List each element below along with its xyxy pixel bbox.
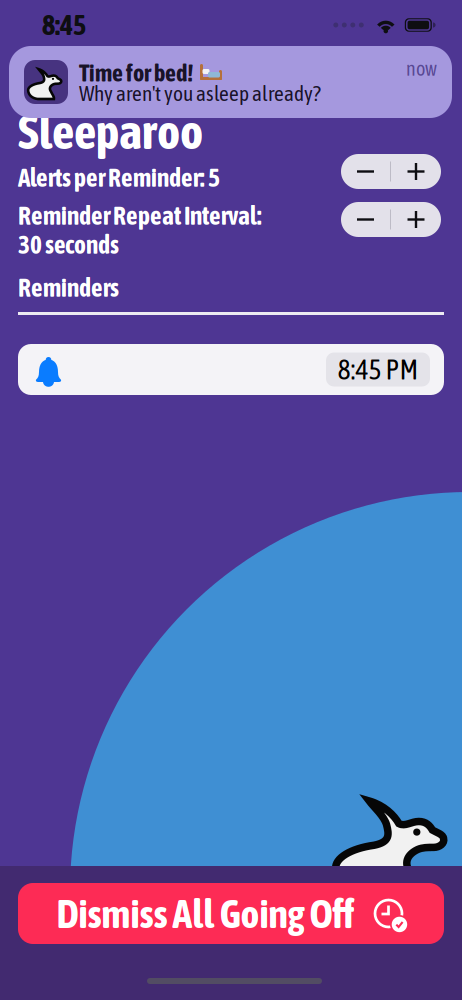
staticText: Time for bed! bbox=[79, 59, 193, 86]
staticText: Dismiss All Going Off bbox=[56, 891, 354, 936]
button[interactable]: Decrease bbox=[341, 154, 390, 189]
button[interactable]: Increase bbox=[391, 154, 441, 189]
staticText: 8:45 bbox=[42, 9, 86, 41]
staticText: Why aren't you asleep already? bbox=[79, 81, 321, 105]
staticText: Alerts per Reminder: 5 bbox=[18, 163, 220, 192]
button[interactable]: Increase bbox=[391, 202, 441, 237]
button[interactable]: Dismiss All Going Off bbox=[18, 883, 444, 944]
staticText: 8:45 PM bbox=[337, 353, 418, 386]
button[interactable]: 8:45 PM bbox=[18, 344, 444, 395]
button[interactable]: Decrease bbox=[341, 202, 390, 237]
staticText: now bbox=[406, 57, 437, 80]
staticText: Sleeparoo bbox=[18, 103, 203, 159]
staticText: Reminders bbox=[18, 273, 119, 302]
staticText: Reminder Repeat Interval: 30 seconds bbox=[18, 201, 262, 259]
